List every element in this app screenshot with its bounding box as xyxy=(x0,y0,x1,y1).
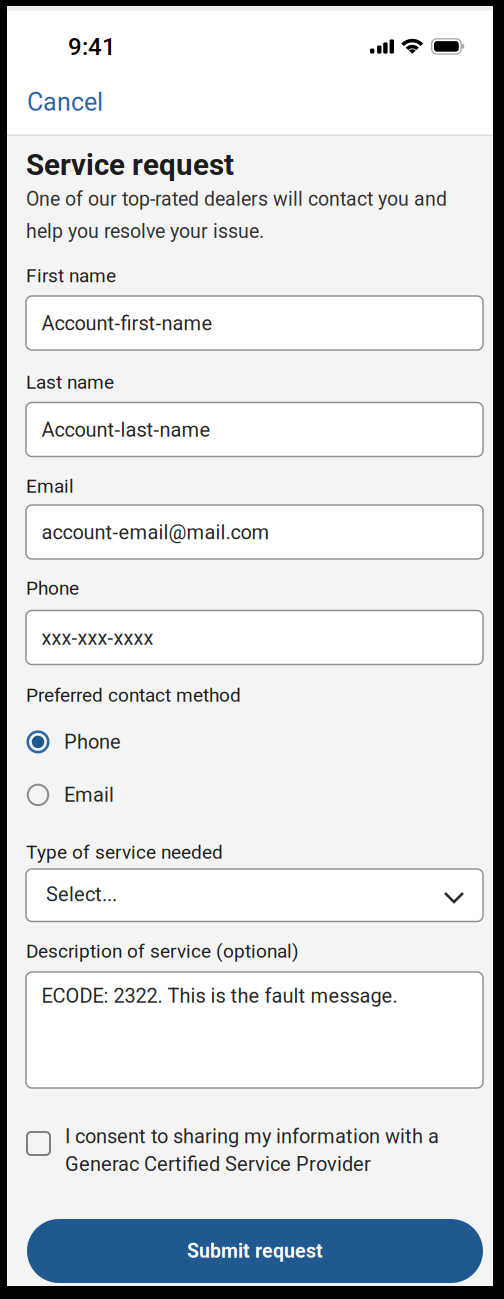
staticText: Description of service (optional) xyxy=(26,940,299,962)
button[interactable]: Submit request xyxy=(27,1219,483,1283)
button[interactable]: Account-last-name xyxy=(26,402,483,456)
staticText: account-email@mail.com xyxy=(41,521,269,544)
button[interactable]: Select... xyxy=(26,869,483,921)
staticText: Phone xyxy=(26,577,79,599)
button[interactable]: Email xyxy=(26,783,114,806)
staticText: I consent to sharing my information with… xyxy=(65,1125,439,1176)
staticText: Type of service needed xyxy=(26,841,223,863)
staticText: Preferred contact method xyxy=(26,684,241,706)
staticText: One of our top-rated dealers will contac… xyxy=(26,188,447,243)
staticText: xxx-xxx-xxxx xyxy=(41,626,153,649)
staticText: Account-first-name xyxy=(41,312,212,335)
staticText: Last name xyxy=(26,371,114,393)
button[interactable]: Phone xyxy=(26,730,121,753)
staticText: Submit request xyxy=(187,1240,323,1262)
staticText: Cancel xyxy=(27,88,103,117)
staticText: Select... xyxy=(46,883,117,906)
button[interactable]: Cancel xyxy=(27,88,103,117)
staticText: Service request xyxy=(26,148,234,182)
button[interactable]: xxx-xxx-xxxx xyxy=(26,610,483,664)
staticText: Email xyxy=(64,783,114,806)
staticText: ECODE: 2322. This is the fault message. xyxy=(41,984,397,1007)
button[interactable]: Account-first-name xyxy=(26,296,483,350)
button[interactable]: ECODE: 2322. This is the fault message. xyxy=(26,972,483,1088)
button[interactable]: account-email@mail.com xyxy=(26,505,483,559)
staticText: Email xyxy=(26,475,74,497)
button[interactable]: I consent to sharing my information with… xyxy=(27,1124,467,1180)
staticText: 9:41 xyxy=(68,33,116,60)
staticText: Account-last-name xyxy=(41,418,210,441)
staticText: Phone xyxy=(64,730,121,753)
staticText: First name xyxy=(26,265,116,286)
